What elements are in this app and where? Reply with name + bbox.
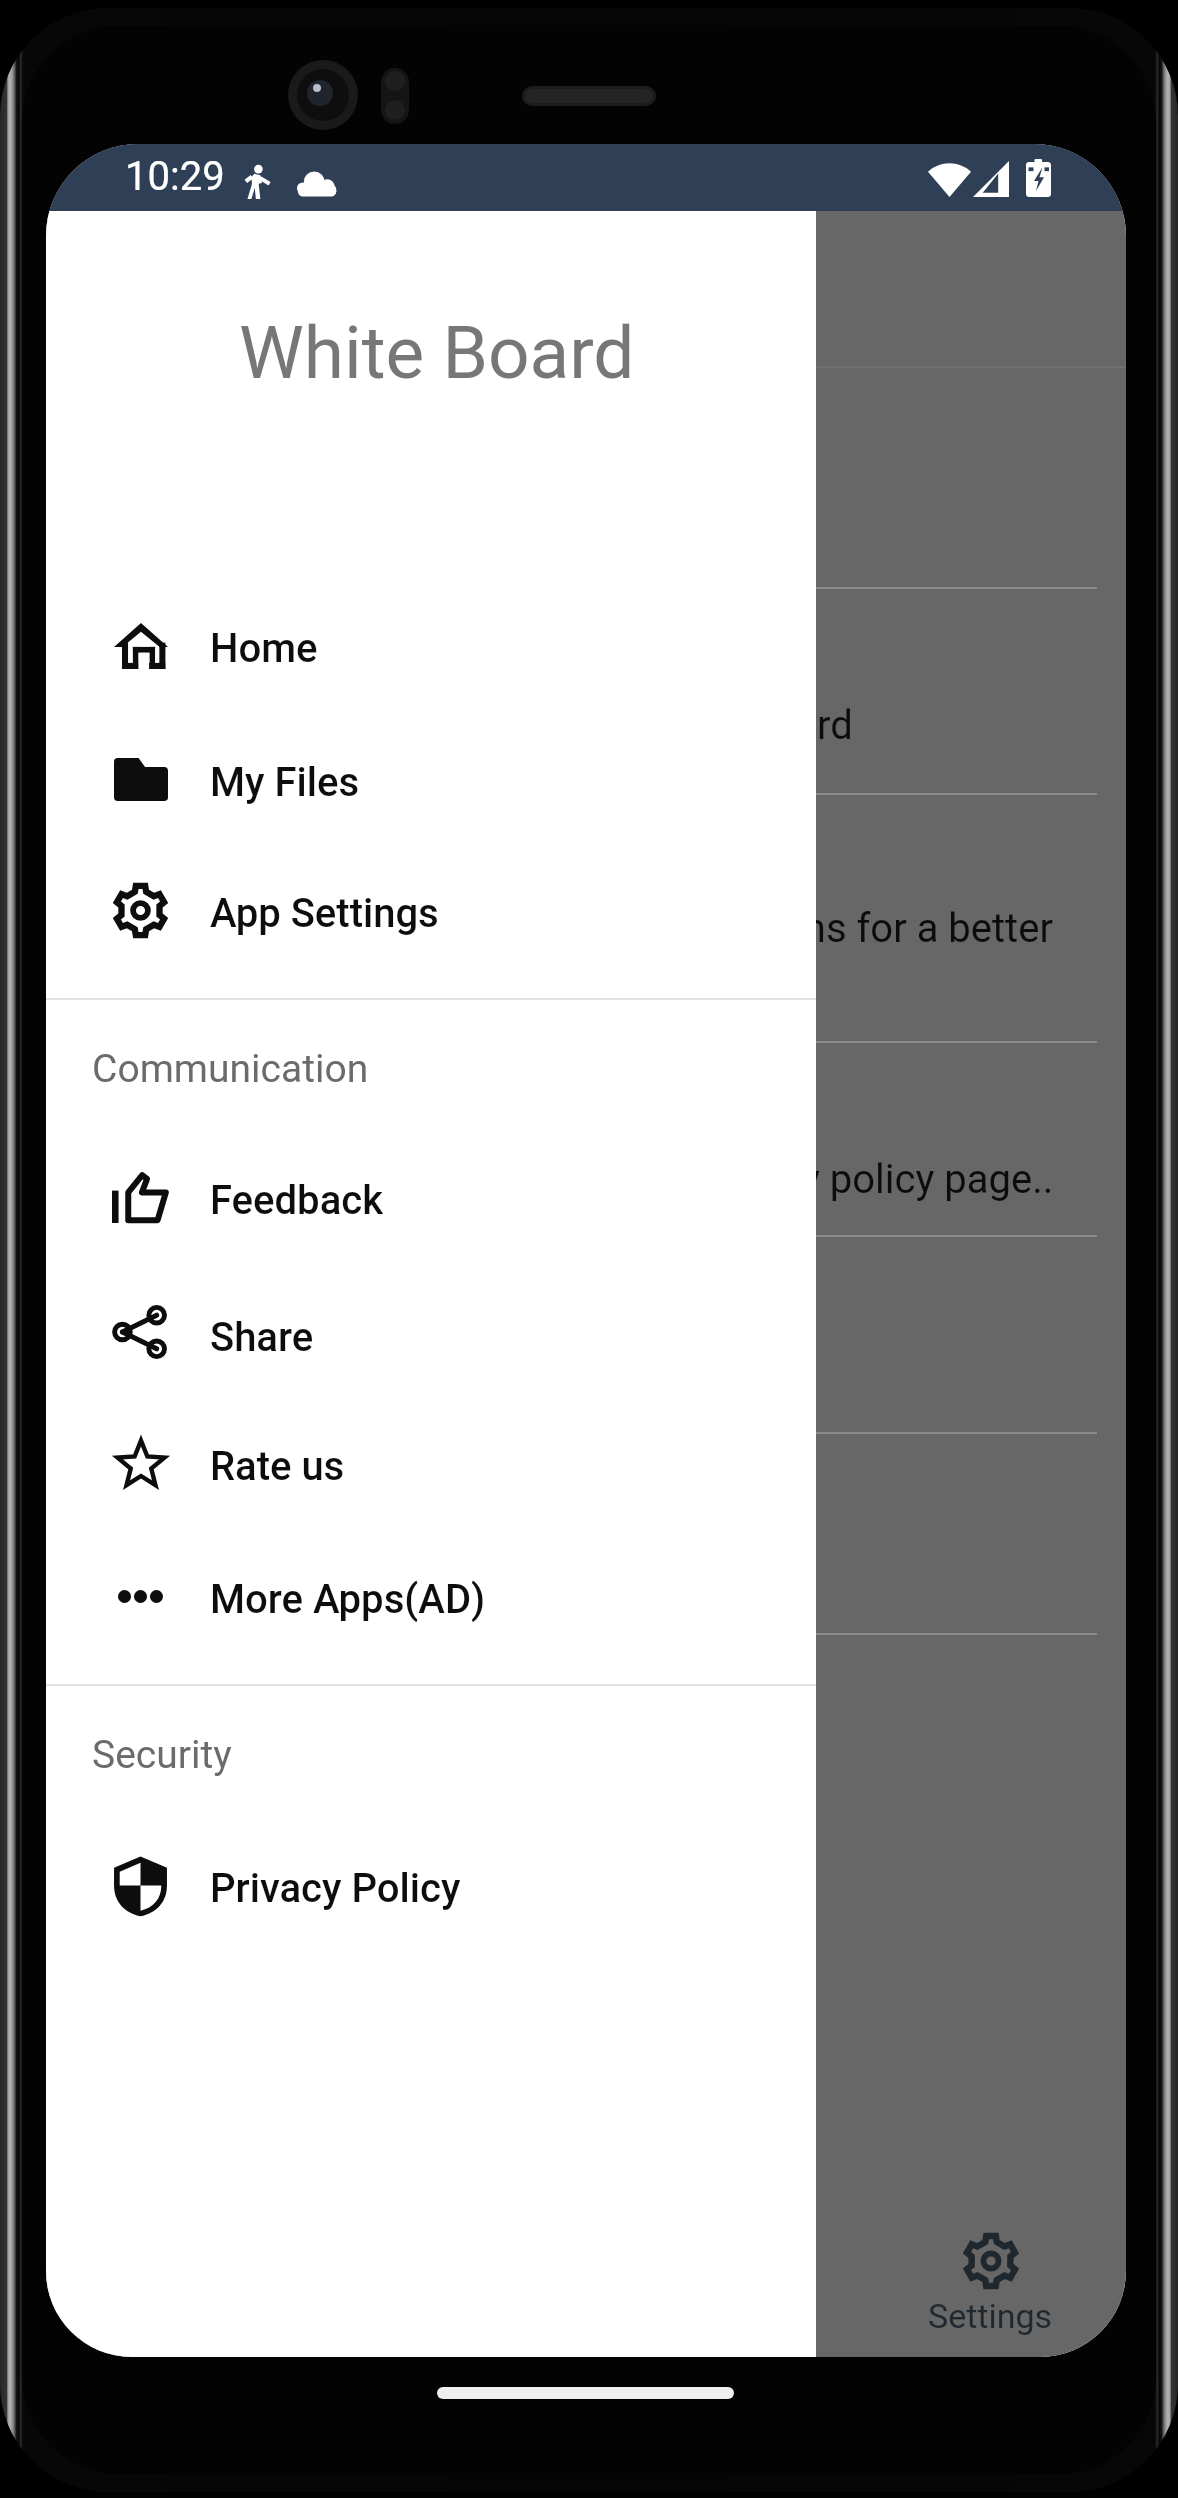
staticText: White Board [239,310,635,396]
staticText: Rate us [210,1443,345,1490]
button[interactable]: My Files [46,716,816,848]
staticText: More Apps(AD) [210,1576,486,1623]
button[interactable]: Rate us [46,1400,816,1532]
staticText: Settings [928,2296,1053,2336]
staticText: Share [210,1314,314,1361]
button[interactable]: App Settings [46,847,816,979]
staticText: Home [210,625,318,672]
staticText: Security [92,1732,232,1778]
staticText: Communication [92,1046,369,1092]
staticText: Open the privacy policy page.. [524,1156,1054,1203]
staticText: Feedback [210,1177,384,1224]
staticText: Privacy Policy [210,1865,461,1912]
staticText: 10:29 [125,153,225,200]
button[interactable]: Feedback [46,1134,816,1266]
staticText: White Board [636,702,853,749]
staticText: Enable options for a better [583,905,1053,952]
button[interactable]: More Apps(AD) [46,1533,816,1665]
staticText: App Settings [210,890,439,937]
button[interactable]: Home [46,582,816,714]
button[interactable]: Share [46,1271,816,1403]
button[interactable]: Settings [808,2200,1126,2357]
button[interactable]: Privacy Policy [46,1822,816,1954]
staticText: My Files [210,759,360,806]
